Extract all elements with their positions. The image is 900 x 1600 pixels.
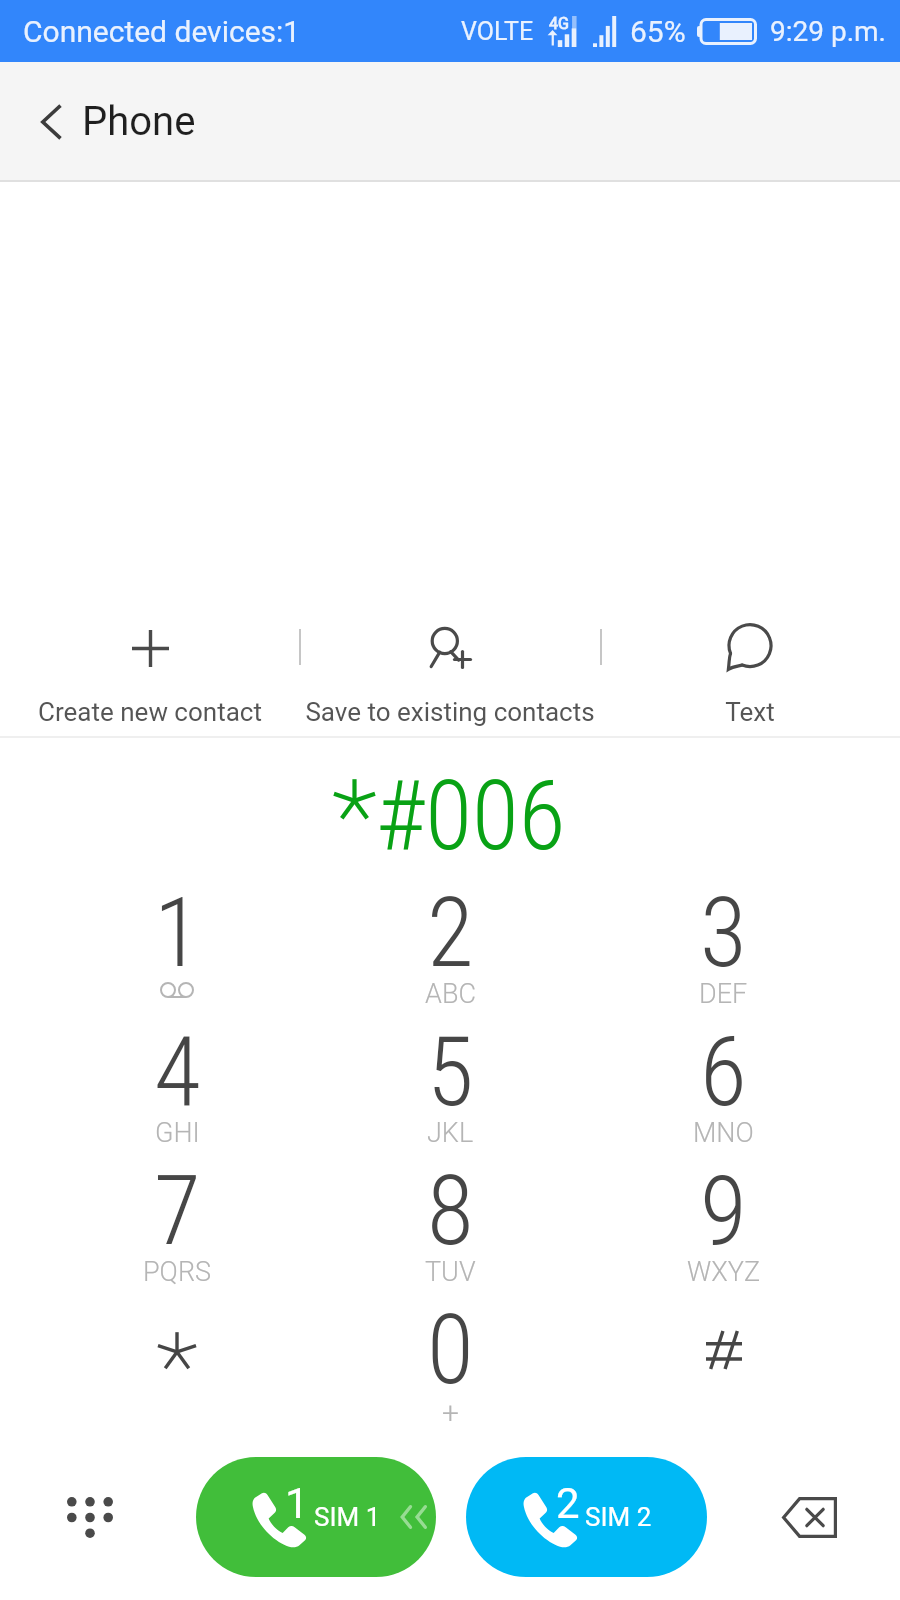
button[interactable]: 8 [314, 1160, 587, 1299]
staticText: Save to existing contacts [305, 697, 595, 727]
staticText: 8 [427, 1155, 474, 1268]
staticText: 5 [427, 1016, 474, 1129]
staticText: Phone [82, 98, 196, 145]
button[interactable]: 1 [196, 1457, 436, 1577]
button[interactable]: 2 [314, 882, 587, 1021]
button[interactable]: Save to existing contacts [300, 600, 600, 735]
staticText: 6 [700, 1016, 747, 1129]
staticText: 65% [630, 14, 686, 49]
staticText: Text [725, 697, 775, 727]
staticText: WXYZ [687, 1256, 761, 1288]
staticText: JKL [427, 1117, 474, 1149]
button[interactable]: 5 [314, 1021, 587, 1160]
button[interactable]: 7 [40, 1160, 314, 1299]
staticText: 1 [285, 1479, 309, 1528]
button[interactable]: Back [41, 98, 196, 145]
staticText: ABC [425, 978, 476, 1010]
staticText: TUV [425, 1256, 476, 1288]
staticText: Connected devices:1 [23, 14, 301, 49]
button[interactable]: Text [600, 600, 900, 735]
staticText: 9 [700, 1155, 747, 1268]
staticText: Create new contact [38, 697, 262, 727]
button[interactable]: Create new contact [0, 600, 300, 735]
button[interactable]: 2 [466, 1457, 707, 1577]
staticText: 9:29 p.m. [770, 15, 886, 48]
staticText: 2 [556, 1479, 580, 1528]
button[interactable]: Backspace [769, 1477, 849, 1557]
staticText: DEF [699, 978, 748, 1010]
staticText: MNO [693, 1117, 754, 1149]
staticText: PQRS [143, 1256, 212, 1288]
other: Back [41, 105, 61, 139]
button[interactable]: 3 [587, 882, 860, 1021]
staticText: SIM 1 [314, 1502, 381, 1532]
staticText: #006 [376, 760, 566, 864]
button[interactable]: 4 [40, 1021, 314, 1160]
button[interactable]: 1 [40, 882, 314, 1021]
staticText: 7 [154, 1155, 201, 1268]
staticText: + [442, 1395, 459, 1430]
staticText: VOLTE [461, 17, 534, 46]
staticText: 4G [549, 14, 569, 33]
button[interactable]: Dialpad [52, 1477, 128, 1557]
button[interactable]: 9 [587, 1160, 860, 1299]
staticText: 2 [427, 877, 474, 990]
staticText: 1 [154, 877, 201, 990]
button[interactable] [587, 1299, 860, 1438]
button[interactable] [40, 1299, 314, 1438]
staticText: SIM 2 [585, 1502, 652, 1532]
staticText: 0 [427, 1294, 474, 1407]
staticText: GHI [155, 1117, 200, 1149]
staticText: 3 [700, 877, 747, 990]
button[interactable]: 0 [314, 1299, 587, 1438]
button[interactable]: 6 [587, 1021, 860, 1160]
staticText: 4 [154, 1016, 201, 1129]
